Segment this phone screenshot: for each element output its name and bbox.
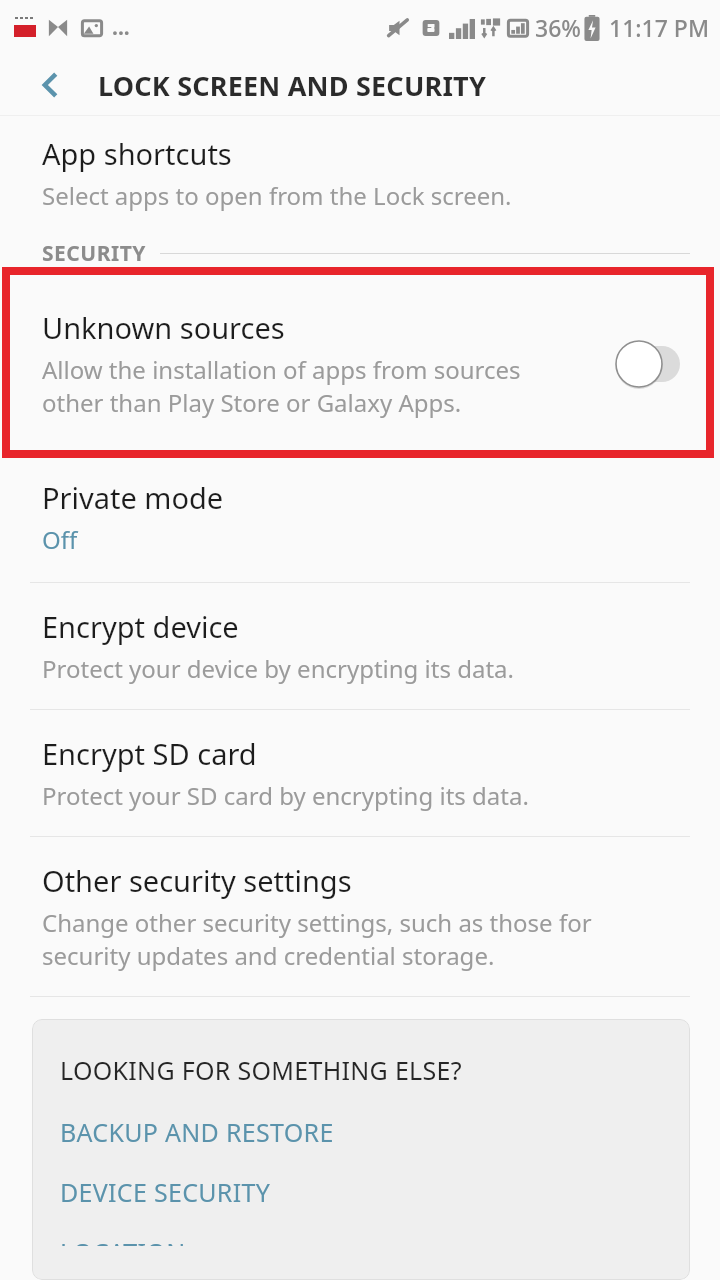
staticText: LOCATION: [60, 1235, 186, 1246]
staticText: LOCK SCREEN AND SECURITY: [98, 67, 486, 104]
button[interactable]: DEVICE SECURITY: [60, 1175, 271, 1209]
button[interactable]: Unknown sources toggle, off: [608, 338, 686, 390]
staticText: 36%: [535, 12, 581, 43]
staticText: Off: [42, 523, 78, 556]
staticText: Encrypt SD card: [42, 734, 257, 773]
button[interactable]: BACKUP AND RESTORE: [60, 1115, 334, 1149]
button[interactable]: Encrypt device: [0, 583, 720, 709]
button[interactable]: Other security settings: [0, 837, 720, 996]
staticText: Protect your SD card by encrypting its d…: [42, 779, 529, 812]
button[interactable]: Unknown sources: [0, 270, 720, 453]
staticText: DEVICE SECURITY: [60, 1175, 271, 1209]
button[interactable]: Back: [22, 57, 78, 113]
staticText: SECURITY: [42, 239, 146, 268]
staticText: App shortcuts: [42, 134, 232, 173]
staticText: 11:17 PM: [609, 12, 710, 43]
staticText: Allow the installation of apps from sour…: [42, 353, 521, 419]
staticText: Change other security settings, such as …: [42, 906, 592, 972]
staticText: BACKUP AND RESTORE: [60, 1115, 334, 1149]
staticText: Other security settings: [42, 861, 352, 900]
staticText: ...: [112, 13, 130, 42]
button[interactable]: LOCATION: [60, 1235, 186, 1246]
staticText: Protect your device by encrypting its da…: [42, 652, 514, 685]
staticText: Encrypt device: [42, 607, 239, 646]
staticText: Unknown sources: [42, 308, 285, 347]
staticText: Select apps to open from the Lock screen…: [42, 179, 512, 212]
staticText: LOOKING FOR SOMETHING ELSE?: [60, 1053, 462, 1087]
button[interactable]: App shortcuts: [0, 116, 720, 236]
staticText: Private mode: [42, 478, 224, 517]
button[interactable]: Private mode: [0, 454, 720, 582]
button[interactable]: Encrypt SD card: [0, 710, 720, 836]
